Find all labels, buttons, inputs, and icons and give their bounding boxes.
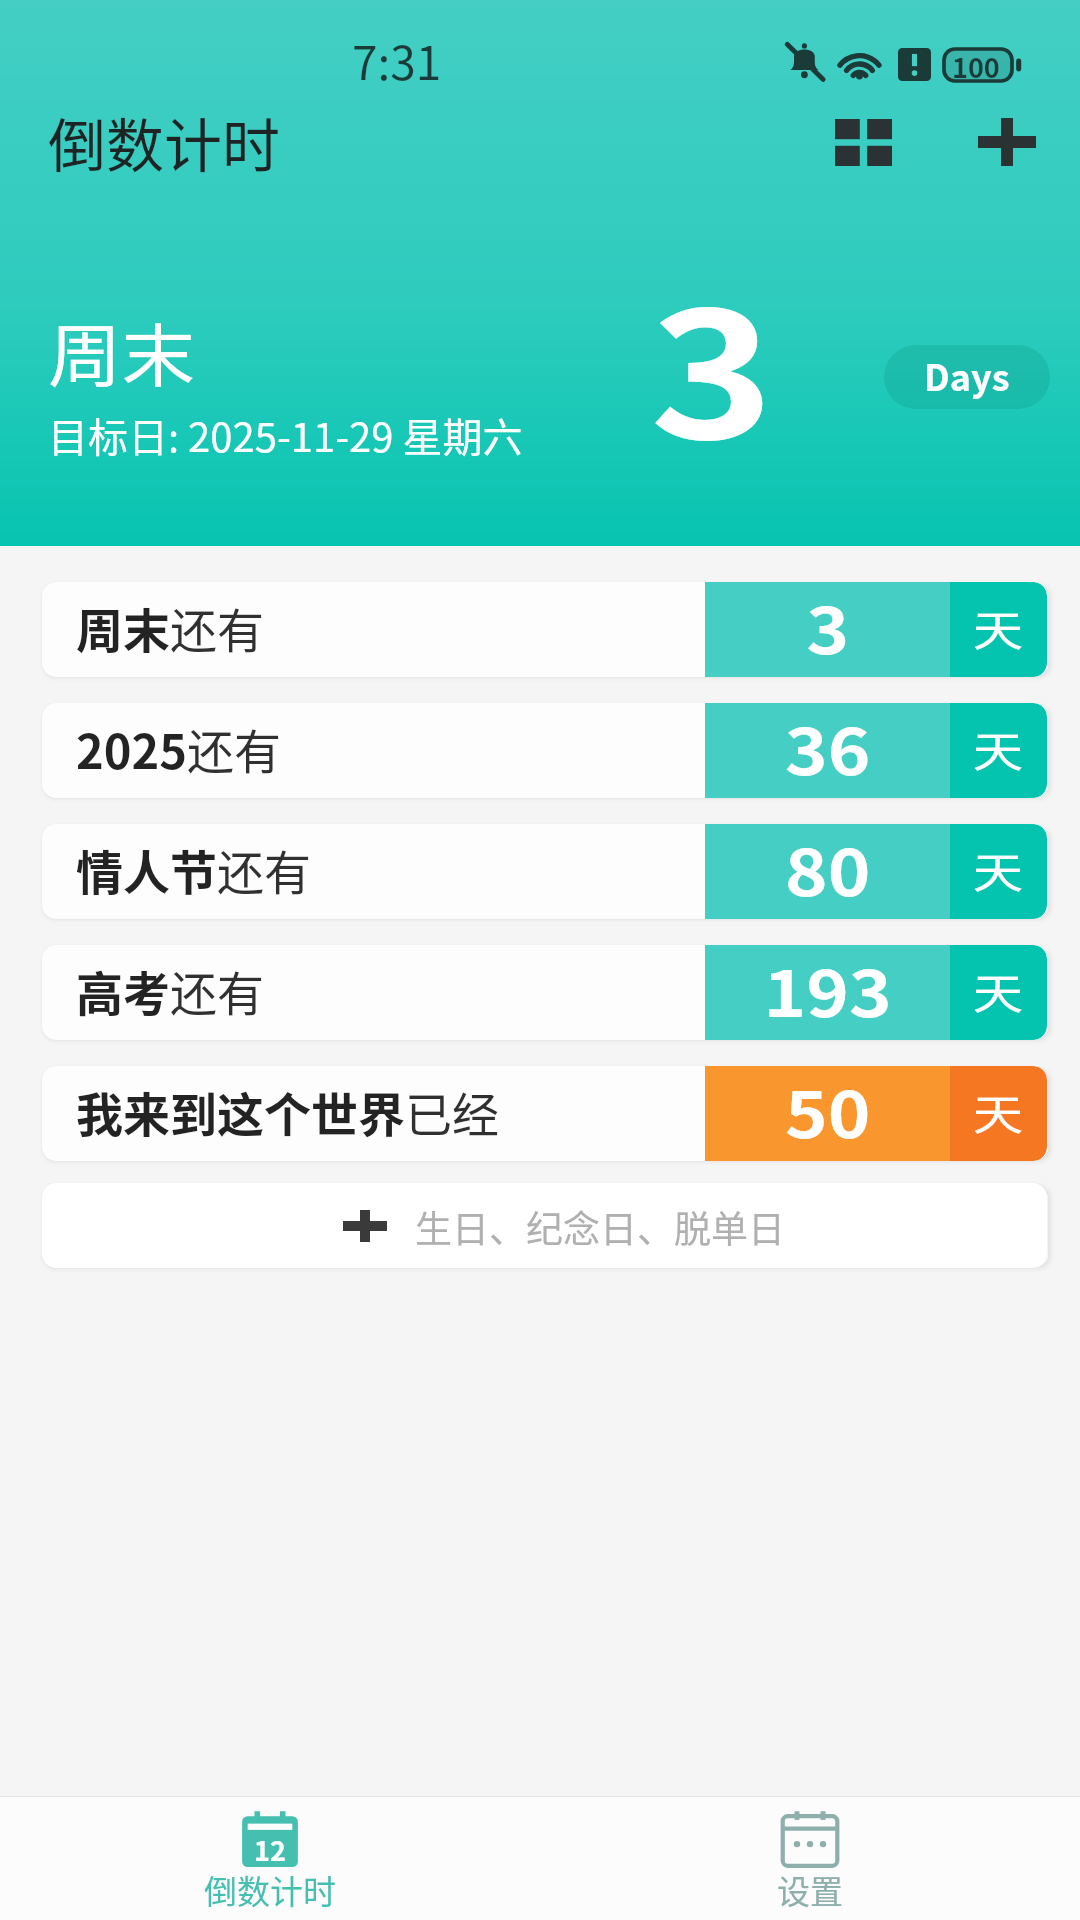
staticText: 天	[973, 839, 1024, 900]
button[interactable]: 我来到这个世界	[42, 1066, 1047, 1161]
button[interactable]: 设置	[540, 1797, 1080, 1920]
staticText: 目标日: 2025-11-29 星期六	[48, 406, 523, 464]
staticText: 我来到这个世界	[76, 1077, 405, 1145]
staticText: 周末	[76, 593, 170, 661]
staticText: 设置	[777, 1866, 843, 1914]
staticText: 50	[785, 1066, 871, 1157]
button[interactable]: 周末	[42, 582, 1047, 677]
staticText: 3	[650, 236, 775, 489]
staticText: 倒数计时	[204, 1866, 336, 1914]
staticText: 天	[973, 1081, 1024, 1142]
button[interactable]: 2025	[42, 703, 1047, 798]
staticText: 12	[254, 1830, 286, 1869]
staticText: 高考	[76, 956, 170, 1024]
staticText: 36	[785, 703, 871, 794]
staticText: 2025	[76, 714, 187, 782]
button[interactable]: 情人节	[42, 824, 1047, 919]
staticText: 还有	[217, 835, 311, 903]
staticText: 已经	[405, 1077, 499, 1145]
staticText: 情人节	[76, 835, 217, 903]
staticText: 周末	[48, 302, 196, 400]
staticText: 还有	[170, 593, 264, 661]
staticText: 100	[952, 47, 1000, 86]
staticText: 7:31	[352, 27, 442, 94]
button[interactable]: Add countdown	[955, 90, 1059, 194]
staticText: 193	[764, 945, 892, 1036]
button[interactable]: 12	[0, 1797, 540, 1920]
staticText: 还有	[170, 956, 264, 1024]
staticText: 3	[806, 582, 849, 673]
staticText: 生日、纪念日、脱单日	[415, 1200, 785, 1254]
staticText: 天	[973, 960, 1024, 1021]
button[interactable]: Grid view	[811, 90, 915, 194]
button[interactable]: 生日、纪念日、脱单日	[42, 1183, 1047, 1268]
staticText: 天	[973, 597, 1024, 658]
staticText: 还有	[187, 714, 281, 782]
staticText: 80	[785, 824, 871, 915]
staticText: Days	[924, 349, 1010, 401]
button[interactable]: 高考	[42, 945, 1047, 1040]
staticText: 倒数计时	[48, 100, 281, 184]
staticText: 天	[973, 718, 1024, 779]
